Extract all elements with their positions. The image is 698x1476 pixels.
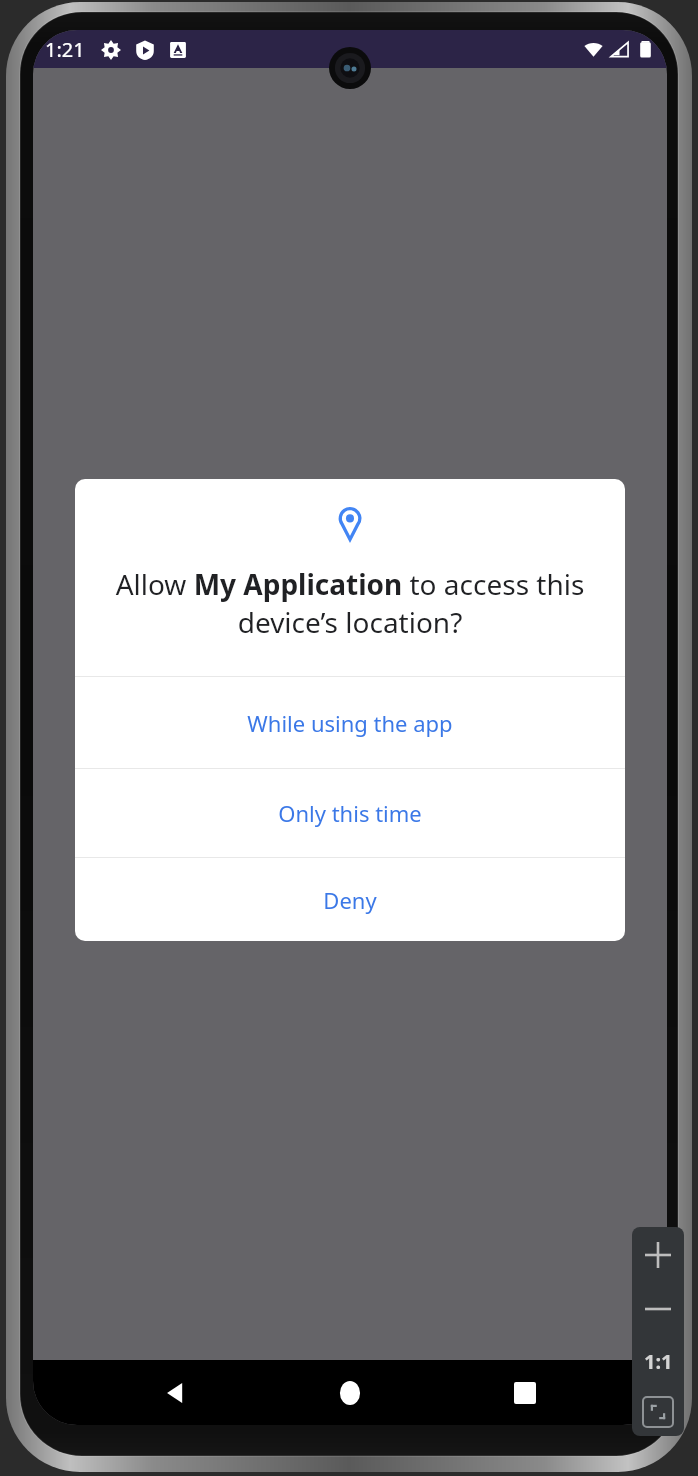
staticText: 1:21 bbox=[45, 36, 85, 63]
button[interactable]: Zoom out bbox=[632, 1283, 684, 1335]
staticText: Allow My Application to access this devi… bbox=[89, 565, 611, 641]
staticText: Deny bbox=[323, 885, 377, 915]
button[interactable]: Back bbox=[144, 1361, 208, 1425]
button[interactable]: Deny bbox=[75, 858, 625, 941]
button[interactable]: Fit to screen bbox=[632, 1387, 684, 1436]
staticText: While using the app bbox=[247, 708, 453, 738]
button[interactable]: Home bbox=[318, 1361, 382, 1425]
button[interactable]: Only this time bbox=[75, 769, 625, 857]
button[interactable]: Recent apps bbox=[493, 1361, 557, 1425]
button[interactable]: While using the app bbox=[75, 677, 625, 768]
staticText: Only this time bbox=[278, 798, 422, 828]
button[interactable]: Zoom in bbox=[632, 1227, 684, 1283]
staticText: 1:1 bbox=[644, 1348, 673, 1375]
button[interactable]: 1:1 bbox=[632, 1335, 684, 1387]
